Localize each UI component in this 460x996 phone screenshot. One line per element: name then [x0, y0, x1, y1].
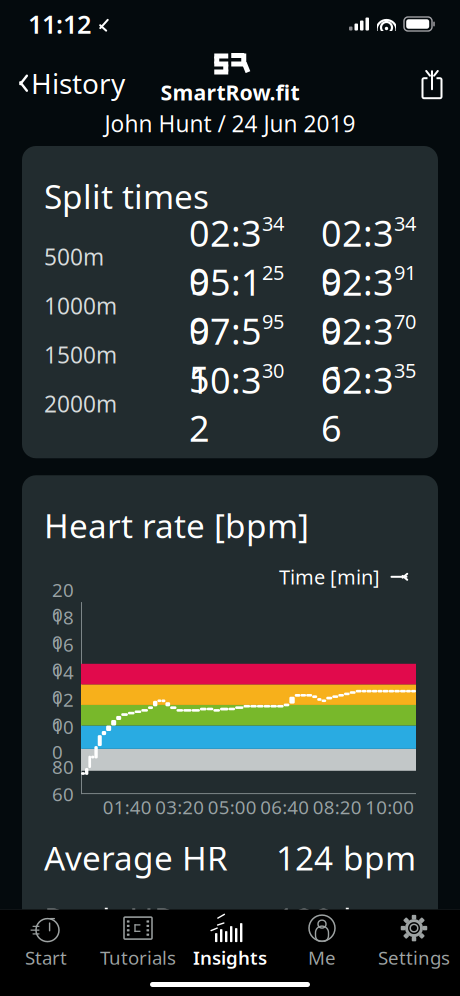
staticText: 30	[262, 357, 284, 384]
staticText: 34	[394, 210, 416, 237]
staticText: 03:20	[155, 795, 204, 819]
staticText: Settings	[378, 945, 450, 970]
staticText: Split times	[44, 174, 209, 218]
staticText: 10:00	[365, 795, 414, 819]
staticText: 500m	[44, 242, 104, 272]
staticText: Tutorials	[100, 945, 176, 970]
staticText: 120	[52, 687, 74, 737]
button[interactable]: Start	[0, 906, 92, 976]
staticText: 140	[52, 660, 74, 709]
button[interactable]: Insights	[184, 906, 276, 976]
staticText: 70	[394, 308, 416, 335]
staticText: 01:40	[103, 795, 152, 819]
staticText: 60	[52, 782, 74, 806]
staticText: History	[31, 65, 125, 102]
staticText: 138	[276, 898, 333, 942]
staticText: 35	[394, 357, 416, 384]
staticText: Insights	[193, 945, 267, 970]
staticText: Heart rate [bpm]	[44, 503, 309, 548]
staticText: 1000m	[44, 291, 117, 321]
button[interactable]: History	[0, 57, 139, 110]
staticText: SmartRow.fit	[160, 78, 299, 106]
staticText: 08:20	[313, 795, 362, 819]
staticText: Time [min]	[279, 563, 380, 590]
staticText: 06:40	[260, 795, 309, 819]
staticText: 160	[52, 632, 74, 682]
staticText: John Hunt / 24 Jun 2019	[104, 108, 355, 138]
staticText: 02:39	[321, 258, 394, 354]
staticText: 91	[394, 259, 416, 286]
staticText: 02:36	[321, 356, 394, 452]
button[interactable]: Settings	[368, 906, 460, 976]
staticText: 11:12	[28, 7, 91, 41]
staticText: 02:39	[321, 209, 394, 305]
staticText: Peak HR	[44, 898, 175, 942]
staticText: 02:36	[321, 307, 394, 403]
staticText: 07:55	[189, 307, 262, 403]
staticText: 34	[262, 210, 284, 237]
staticText: 10:32	[189, 356, 262, 452]
staticText: 25	[262, 259, 284, 286]
staticText: bpm	[343, 835, 416, 880]
staticText: Average HR	[44, 835, 228, 880]
staticText: bpm	[343, 898, 416, 942]
staticText: 80	[52, 754, 74, 779]
staticText: 200	[52, 577, 74, 627]
staticText: 95	[262, 308, 284, 335]
staticText: 2000m	[44, 389, 117, 419]
staticText: 1500m	[44, 340, 117, 370]
staticText: 05:00	[208, 795, 257, 819]
button[interactable]: Me	[276, 906, 368, 976]
staticText: 02:39	[189, 209, 262, 305]
staticText: Start	[25, 945, 67, 970]
button[interactable]: Tutorials	[92, 906, 184, 976]
staticText: 180	[52, 605, 74, 654]
staticText: 100	[52, 714, 74, 764]
staticText: 124	[276, 835, 333, 880]
staticText: Me	[308, 945, 336, 970]
button[interactable]: Share	[404, 60, 460, 106]
staticText: 05:19	[189, 258, 262, 354]
